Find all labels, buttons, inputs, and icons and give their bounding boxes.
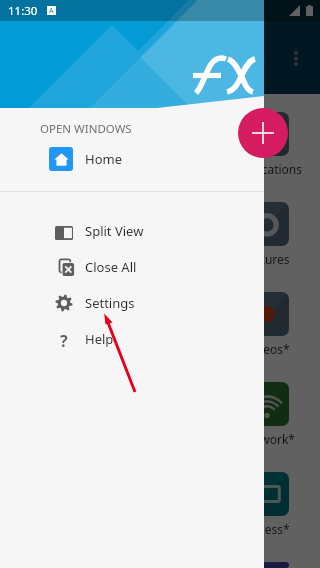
staticText: Network* [240,431,295,447]
button[interactable]: More options [272,34,320,82]
staticText: Videos* [245,341,290,357]
button[interactable]: Media* [214,544,320,568]
staticText: Applications [233,161,302,177]
button[interactable]: Access* [214,454,320,537]
staticText: 11:30 [8,3,38,19]
button[interactable]: Settings [0,285,264,321]
button[interactable]: ? [0,321,264,357]
button[interactable]: Split View [0,213,264,249]
staticText: Access* [245,521,290,537]
staticText: Home [85,150,122,168]
button[interactable]: Close All [0,249,264,285]
button[interactable]: Search [224,34,272,82]
staticText: Settings [85,294,135,312]
staticText: Pictures [244,251,290,267]
button[interactable]: Add [238,108,288,158]
staticText: Close All [85,258,137,276]
staticText: Split View [85,222,144,240]
button[interactable]: Videos* [214,274,320,357]
staticText: ? [60,330,68,348]
button[interactable]: Home [0,146,264,172]
staticText: Help [85,330,114,348]
staticText: OPEN WINDOWS [40,121,132,137]
button[interactable]: Pictures [214,184,320,267]
button[interactable]: Network* [214,364,320,447]
button[interactable]: Applications [214,94,320,177]
staticText: A [49,6,54,15]
